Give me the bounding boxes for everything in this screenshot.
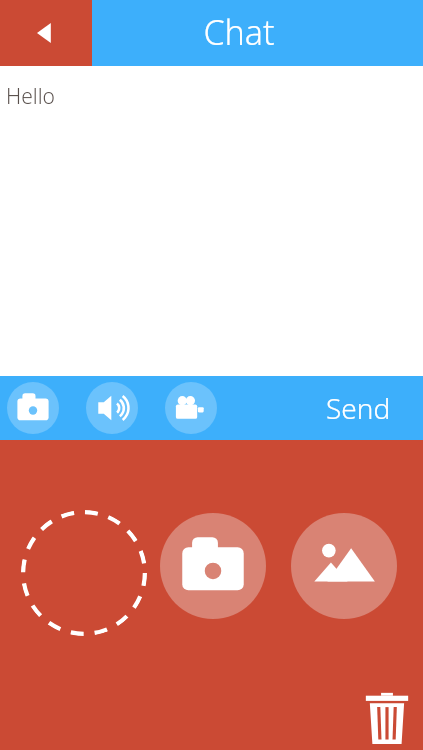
staticText: Send [326, 389, 391, 427]
button[interactable]: Add attachment [21, 510, 147, 636]
button[interactable]: Back [0, 0, 92, 66]
button[interactable]: Take photo [7, 382, 59, 434]
button[interactable]: Send [310, 376, 407, 440]
button[interactable]: Camera [160, 513, 266, 619]
button[interactable]: Record audio [86, 382, 138, 434]
button[interactable]: Gallery [291, 513, 397, 619]
button[interactable]: Delete [358, 689, 416, 747]
button[interactable]: Record video [165, 382, 217, 434]
staticText: Chat [203, 9, 275, 55]
staticText: Hello [6, 82, 55, 111]
